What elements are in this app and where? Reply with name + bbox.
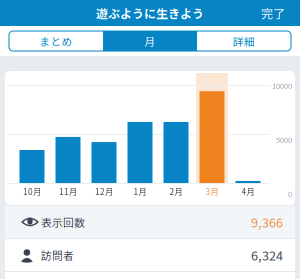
staticText: まとめ [39,33,72,49]
staticText: 月 [144,33,155,49]
staticText: 遊ぶように生きよう [96,4,204,22]
button[interactable]: 表示回数 [5,206,295,238]
button[interactable]: 詳細 [197,31,291,51]
staticText: 5000 [276,134,292,145]
button[interactable]: 月 [103,31,197,51]
button[interactable]: まとめ [9,31,103,51]
staticText: 6,324 [251,246,283,264]
staticText: 2月 [169,185,182,197]
staticText: 12月 [95,185,113,197]
button[interactable]: 完了 [256,0,290,26]
staticText: 9,366 [251,213,283,231]
staticText: 3月 [205,185,218,197]
staticText: 訪問者 [41,247,74,263]
staticText: 10000 [272,80,292,91]
staticText: 11月 [59,185,77,197]
staticText: 4月 [241,185,254,197]
staticText: 10月 [23,185,41,197]
staticText: 0 [288,188,292,199]
staticText: 1月 [133,185,146,197]
staticText: 表示回数 [41,214,85,230]
staticText: 詳細 [233,33,255,49]
staticText: 完了 [261,4,285,22]
button[interactable]: 訪問者 [5,239,295,271]
